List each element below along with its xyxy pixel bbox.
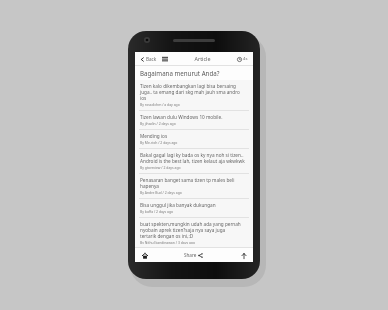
- staticText: Bakal gagal lagi ky bada os ky nya noh s…: [140, 152, 244, 158]
- button[interactable]: Penasaran banget sama tizen tp males bel…: [135, 174, 253, 198]
- button[interactable]: Bakal gagal lagi ky bada os ky nya noh s…: [135, 149, 253, 173]
- button[interactable]: Back: [139, 55, 158, 63]
- button[interactable]: Share: [183, 251, 204, 259]
- staticText: Tizen kalo dikembangkan lagi bisa bersai…: [140, 83, 237, 89]
- button[interactable]: Text size: [236, 56, 249, 62]
- staticText: By baffa / 2 days ago: [140, 209, 174, 214]
- staticText: nyobain aprek tizen?saja nya saya juga: [140, 227, 226, 233]
- staticText: Bisa unggul jika banyak dukungan: [140, 202, 216, 208]
- button[interactable]: Tizen lawan dulu Windows 10 mobile.: [135, 111, 253, 129]
- staticText: Article: [194, 55, 211, 62]
- staticText: Share: [184, 252, 197, 258]
- staticText: juga.. ta emang dari skg mah jauh sma an…: [140, 89, 240, 95]
- button[interactable]: buat spekten,mungkin udah ada yang perna…: [135, 218, 253, 247]
- staticText: buat spekten,mungkin udah ada yang perna…: [140, 221, 241, 227]
- staticText: Android is the best lah, tizen kelaut aj…: [140, 158, 245, 164]
- staticText: 4s: [243, 56, 248, 62]
- staticText: tertarik dengan os ini,:D: [140, 233, 194, 239]
- button[interactable]: Bisa unggul jika banyak dukungan: [135, 199, 253, 217]
- staticText: By Andre Bud / 2 days ago: [140, 190, 182, 195]
- button[interactable]: Scroll to top: [239, 251, 248, 260]
- staticText: Penasaran banget sama tizen tp males bel…: [140, 177, 235, 183]
- staticText: Bagaimana menurut Anda?: [140, 69, 220, 77]
- button[interactable]: Mending ios: [135, 130, 253, 148]
- staticText: Back: [146, 56, 157, 62]
- staticText: Tizen lawan dulu Windows 10 mobile.: [140, 114, 223, 120]
- staticText: By Me-rioh / 2 days ago: [140, 140, 178, 145]
- staticText: ios: [140, 95, 147, 101]
- staticText: Mending ios: [140, 133, 168, 139]
- staticText: By rossdichm / a day ago: [140, 102, 180, 107]
- staticText: By gtoreview / 2 days ago: [140, 165, 181, 170]
- button[interactable]: Menu: [161, 55, 169, 63]
- button[interactable]: Home: [140, 251, 149, 260]
- staticText: By jihadin / 2 days ago: [140, 121, 176, 126]
- staticText: hapenya: [140, 183, 159, 189]
- staticText: By Nithul kandinawan / 3 days ago: [140, 240, 195, 244]
- button[interactable]: Tizen kalo dikembangkan lagi bisa bersai…: [135, 80, 253, 110]
